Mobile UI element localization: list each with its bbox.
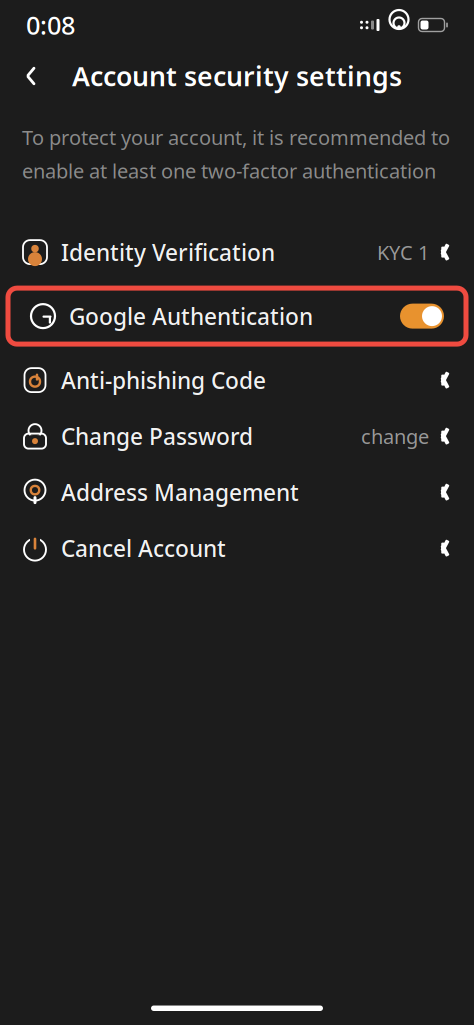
- button[interactable]: Google Authentication: [8, 288, 466, 344]
- staticText: Change Password: [61, 421, 253, 451]
- button[interactable]: Cancel Account: [0, 520, 474, 576]
- staticText: KYC 1: [377, 239, 429, 265]
- staticText: Address Management: [61, 477, 299, 507]
- staticText: Account security settings: [72, 58, 402, 94]
- staticText: To protect your account, it is recommend…: [22, 124, 450, 184]
- button[interactable]: Change Password: [0, 408, 474, 464]
- staticText: change: [361, 423, 429, 449]
- button[interactable]: Address Management: [0, 464, 474, 520]
- staticText: Anti-phishing Code: [61, 365, 266, 395]
- staticText: Google Authentication: [69, 301, 313, 331]
- staticText: Cancel Account: [61, 533, 226, 563]
- button[interactable]: Back: [8, 53, 54, 99]
- button[interactable]: Anti-phishing Code: [0, 352, 474, 408]
- staticText: 0:08: [26, 8, 75, 42]
- staticText: Identity Verification: [61, 237, 275, 267]
- button[interactable]: Identity Verification: [0, 224, 474, 280]
